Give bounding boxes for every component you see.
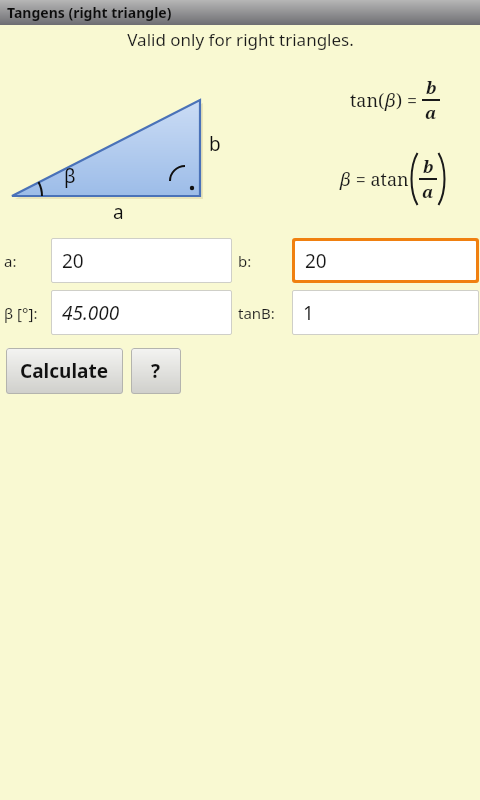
staticText: ) = <box>396 88 422 113</box>
staticText: b <box>426 76 437 99</box>
staticText: 45.000 <box>62 300 120 326</box>
staticText: β <box>340 167 351 192</box>
button[interactable]: 20 <box>52 239 231 282</box>
staticText: b <box>209 131 221 157</box>
staticText: a <box>113 199 124 225</box>
staticText: 20 <box>62 248 84 274</box>
staticText: a: <box>4 251 17 271</box>
staticText: Calculate <box>20 358 109 384</box>
other: Help <box>131 348 181 394</box>
staticText: ? <box>151 358 161 384</box>
staticText: β [°]: <box>4 303 38 323</box>
button[interactable]: 20 <box>295 241 476 280</box>
button[interactable]: Calculate <box>6 348 123 394</box>
staticText: Valid only for right triangles. <box>127 28 354 51</box>
staticText: 1 <box>303 300 314 326</box>
staticText: = atan <box>351 167 409 192</box>
staticText: β <box>64 163 76 189</box>
staticText: b <box>423 155 434 178</box>
staticText: tan( <box>350 88 385 113</box>
staticText: β <box>385 88 396 113</box>
staticText: b: <box>238 251 252 271</box>
staticText: 20 <box>305 248 327 274</box>
staticText: Tangens (right triangle) <box>7 3 172 22</box>
staticText: tanB: <box>238 303 275 323</box>
staticText: a <box>422 180 434 203</box>
staticText: a <box>425 101 437 124</box>
button[interactable]: ? <box>131 348 181 394</box>
button[interactable]: 1 <box>293 291 478 334</box>
button[interactable]: 45.000 <box>52 291 231 334</box>
